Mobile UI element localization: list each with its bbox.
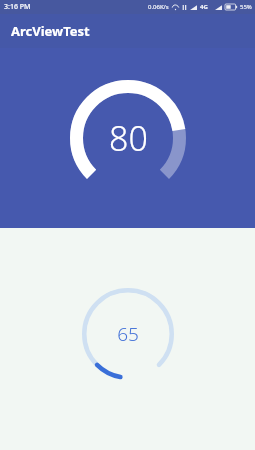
staticText: 80 — [109, 115, 148, 161]
staticText: 65 — [117, 321, 139, 347]
staticText: 3:16 PM — [4, 2, 31, 12]
button[interactable]: Arc gauge 65 percent — [80, 286, 176, 382]
staticText: 0.06K/s — [148, 3, 169, 11]
staticText: ArcViewTest — [11, 22, 90, 40]
staticText: 55% — [240, 3, 252, 11]
staticText: 4G — [200, 3, 208, 11]
button[interactable]: Arc gauge 80 percent — [68, 78, 188, 198]
